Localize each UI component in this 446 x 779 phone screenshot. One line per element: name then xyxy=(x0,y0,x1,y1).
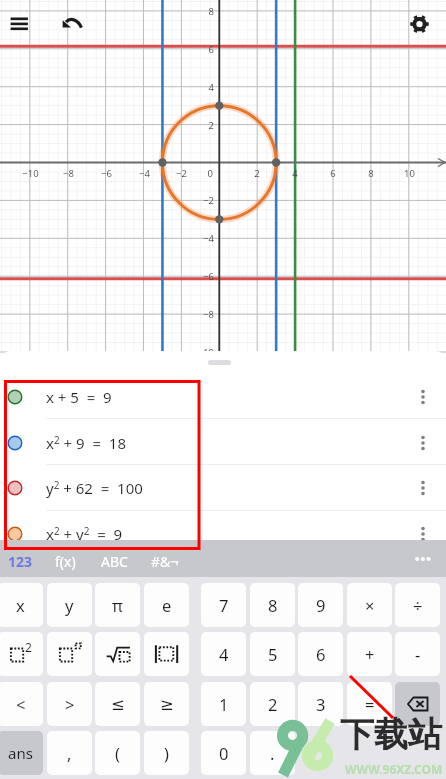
button[interactable]: More xyxy=(406,540,446,577)
staticText: ≥ xyxy=(160,695,174,714)
staticText: = xyxy=(365,693,375,715)
staticText: #&¬ xyxy=(151,552,179,571)
button[interactable]: 2 xyxy=(0,632,43,676)
button[interactable]: x2 + 9 = 18 xyxy=(0,420,446,466)
staticText: 2 xyxy=(268,693,278,715)
button[interactable]: ) xyxy=(144,731,189,775)
button[interactable]: = xyxy=(347,682,392,726)
staticText: −2 xyxy=(203,194,214,207)
button[interactable]: More options xyxy=(410,511,436,540)
staticText: 8 xyxy=(208,5,214,18)
button[interactable]: ÷ xyxy=(395,583,440,627)
staticText: < xyxy=(16,693,26,715)
staticText: y xyxy=(65,594,74,616)
button[interactable]: #&¬ xyxy=(139,545,191,577)
button[interactable]: e xyxy=(144,583,189,627)
button[interactable]: 1 xyxy=(201,682,246,726)
staticText: 4 xyxy=(292,167,298,180)
button[interactable]: . xyxy=(250,731,295,775)
staticText: 6 xyxy=(208,43,214,56)
staticText: + xyxy=(365,643,375,665)
button[interactable]: 6 xyxy=(298,632,343,676)
button[interactable]: f(x) xyxy=(39,545,91,577)
button[interactable]: 0 xyxy=(201,731,246,775)
button[interactable]: More options xyxy=(410,374,436,420)
staticText: −6 xyxy=(203,270,214,283)
button[interactable]: ≥ xyxy=(144,682,189,726)
button[interactable]: x2 + y2 = 9 xyxy=(0,511,446,540)
button[interactable]: 3 xyxy=(298,682,343,726)
button[interactable]: y2 + 62 = 100 xyxy=(0,465,446,511)
button[interactable]: < xyxy=(0,682,43,726)
staticText: 4 xyxy=(219,643,229,665)
staticText: 8 xyxy=(368,167,374,180)
staticText: y2 + 62 = 100 xyxy=(46,478,143,498)
staticText: f(x) xyxy=(55,552,76,571)
staticText: 9 xyxy=(316,594,326,616)
staticText: 2 xyxy=(254,167,260,180)
staticText: WWW.96XZ.COM xyxy=(345,761,443,777)
staticText: −8 xyxy=(63,167,74,180)
button[interactable]: × xyxy=(347,583,392,627)
staticText: −10 xyxy=(197,346,214,359)
staticText: x + 5 = 9 xyxy=(46,387,112,407)
staticText: , xyxy=(67,742,72,764)
staticText: −4 xyxy=(203,232,214,245)
staticText: 1 xyxy=(219,693,229,715)
button[interactable]: 9 xyxy=(298,583,343,627)
staticText: 4 xyxy=(208,81,214,94)
staticText: > xyxy=(65,693,75,715)
staticText: ÷ xyxy=(413,594,423,616)
staticText: e xyxy=(162,594,172,616)
staticText: −10 xyxy=(22,167,39,180)
button[interactable]: , xyxy=(47,731,92,775)
button[interactable]: 8 xyxy=(250,583,295,627)
staticText: 2 xyxy=(208,119,214,132)
button[interactable]: π xyxy=(95,583,140,627)
button[interactable]: 5 xyxy=(250,632,295,676)
button[interactable]: x + 5 = 9 xyxy=(0,374,446,420)
staticText: 10 xyxy=(404,167,415,180)
button[interactable]: 7 xyxy=(201,583,246,627)
staticText: 下载站 xyxy=(340,713,442,756)
button[interactable]: ABC xyxy=(88,545,140,577)
button[interactable]: x xyxy=(0,583,43,627)
button[interactable]: 123 xyxy=(0,545,46,577)
staticText: ABC xyxy=(101,552,128,571)
staticText: −2 xyxy=(176,167,187,180)
staticText: 3 xyxy=(316,693,326,715)
staticText: x xyxy=(16,594,25,616)
staticText: ≤ xyxy=(111,695,125,714)
staticText: 5 xyxy=(268,643,278,665)
button[interactable] xyxy=(47,632,92,676)
staticText: . xyxy=(270,742,275,764)
button[interactable]: ans xyxy=(0,731,43,775)
staticText: ( xyxy=(115,742,120,764)
button[interactable]: 4 xyxy=(201,632,246,676)
button[interactable]: More options xyxy=(410,465,436,511)
button[interactable] xyxy=(144,632,189,676)
staticText: 0 xyxy=(219,742,229,764)
staticText: 2 xyxy=(25,639,32,655)
button[interactable]: ( xyxy=(95,731,140,775)
button[interactable]: ≤ xyxy=(95,682,140,726)
button[interactable] xyxy=(95,632,140,676)
button[interactable]: 2 xyxy=(250,682,295,726)
button[interactable]: > xyxy=(47,682,92,726)
button[interactable]: Settings xyxy=(403,8,435,40)
button[interactable]: - xyxy=(395,632,440,676)
button[interactable]: y xyxy=(47,583,92,627)
staticText: 0 xyxy=(207,167,213,180)
button[interactable]: More options xyxy=(410,420,436,466)
button[interactable]: Menu xyxy=(4,8,36,40)
button[interactable]: + xyxy=(347,632,392,676)
staticText: 6 xyxy=(316,643,326,665)
button[interactable]: Undo xyxy=(56,8,88,40)
staticText: 8 xyxy=(268,594,278,616)
staticText: −8 xyxy=(203,308,214,321)
staticText: ) xyxy=(164,742,169,764)
staticText: 6 xyxy=(330,167,336,180)
staticText: 7 xyxy=(219,594,229,616)
staticText: - xyxy=(415,643,421,665)
button[interactable] xyxy=(395,682,440,726)
